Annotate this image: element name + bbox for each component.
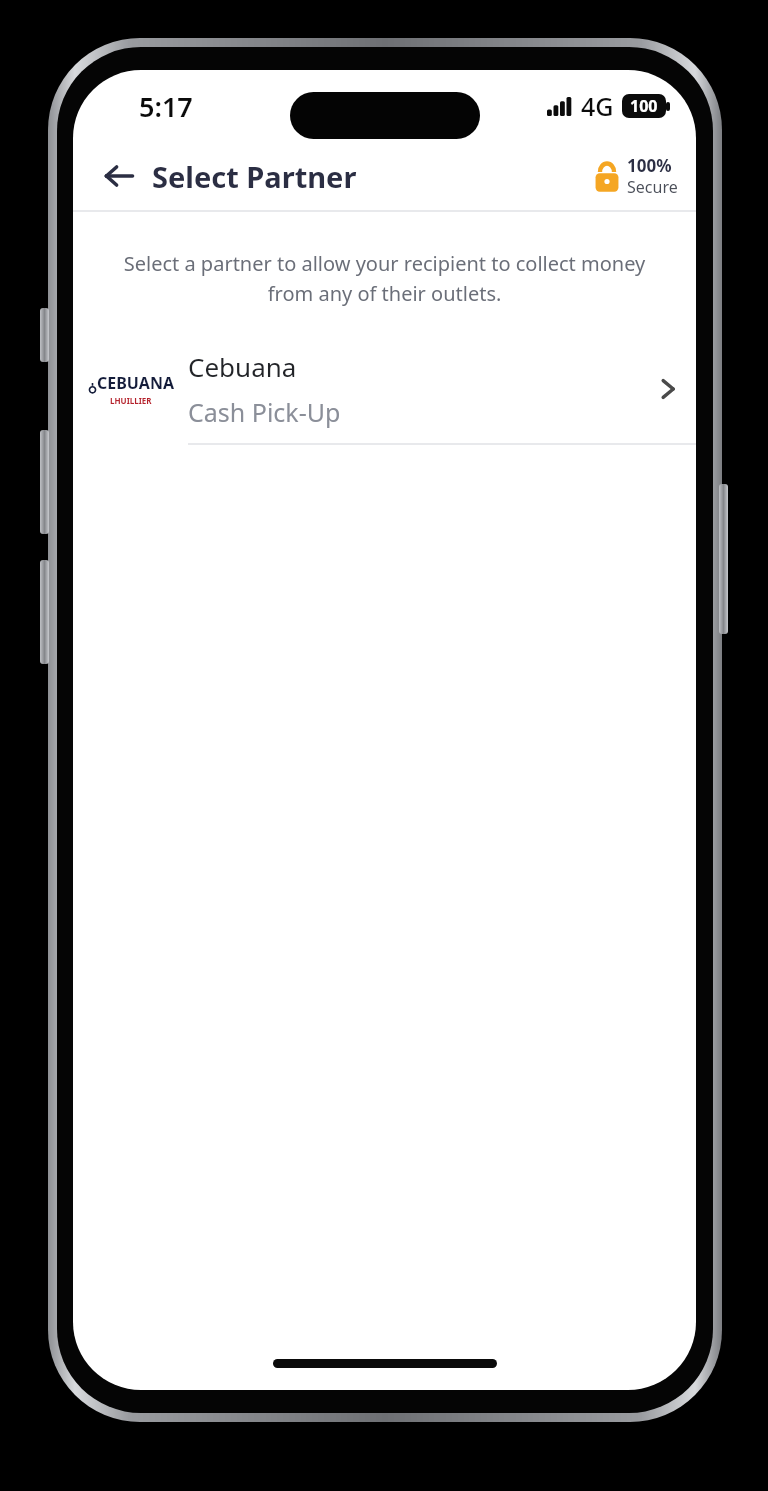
- staticText: CEBUANA: [97, 372, 174, 394]
- staticText: Select a partner to allow your recipient…: [97, 250, 672, 307]
- staticText: 100: [630, 95, 658, 117]
- staticText: Select Partner: [152, 157, 357, 196]
- button[interactable]: CEBUANA: [73, 335, 696, 443]
- button[interactable]: 100%: [594, 154, 678, 199]
- button[interactable]: Back: [91, 148, 147, 204]
- staticText: 100%: [627, 154, 672, 177]
- staticText: 5:17: [139, 88, 193, 125]
- staticText: Cash Pick-Up: [188, 395, 341, 429]
- staticText: Secure: [627, 176, 678, 198]
- staticText: LHUILLIER: [110, 395, 152, 406]
- staticText: Cebuana: [188, 349, 297, 384]
- staticText: 4G: [581, 89, 614, 123]
